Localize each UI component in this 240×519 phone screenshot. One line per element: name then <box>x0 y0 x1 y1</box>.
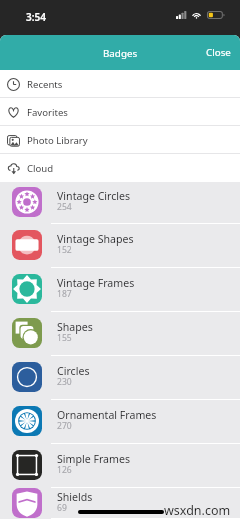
staticText: 270 <box>57 420 72 432</box>
staticText: Circles <box>57 364 90 378</box>
button[interactable]: Favorites <box>0 98 240 126</box>
staticText: Photo Library <box>27 134 88 147</box>
button[interactable]: Cloud <box>0 154 240 182</box>
staticText: 69 <box>57 502 67 514</box>
staticText: Shields <box>57 490 93 504</box>
button[interactable]: Circles <box>0 356 240 400</box>
staticText: 3:54 <box>26 10 46 24</box>
staticText: Recents <box>27 78 63 91</box>
staticText: Vintage Circles <box>57 189 131 203</box>
staticText: Cloud <box>27 162 54 175</box>
staticText: 254 <box>57 201 72 213</box>
button[interactable]: Close <box>197 39 240 66</box>
staticText: Simple Frames <box>57 452 130 466</box>
staticText: 155 <box>57 332 72 344</box>
staticText: Shapes <box>57 320 93 334</box>
staticText: Badges <box>103 47 138 60</box>
staticText: Ornamental Frames <box>57 408 157 422</box>
staticText: Favorites <box>27 106 68 119</box>
staticText: Vintage Frames <box>57 276 135 290</box>
button[interactable]: Vintage Shapes <box>0 224 240 268</box>
button[interactable]: Vintage Circles <box>0 182 240 224</box>
button[interactable]: Simple Frames <box>0 444 240 488</box>
button[interactable]: Recents <box>0 70 240 98</box>
staticText: wsxdn.com <box>164 502 231 519</box>
button[interactable]: Photo Library <box>0 126 240 154</box>
button[interactable]: Shields <box>0 488 240 519</box>
staticText: Vintage Shapes <box>57 232 134 246</box>
staticText: 152 <box>57 244 72 256</box>
staticText: 230 <box>57 376 72 388</box>
staticText: 126 <box>57 464 72 476</box>
button[interactable]: Shapes <box>0 312 240 356</box>
button[interactable]: Vintage Frames <box>0 268 240 312</box>
staticText: 187 <box>57 288 72 300</box>
button[interactable]: Ornamental Frames <box>0 400 240 444</box>
staticText: Close <box>206 46 231 59</box>
